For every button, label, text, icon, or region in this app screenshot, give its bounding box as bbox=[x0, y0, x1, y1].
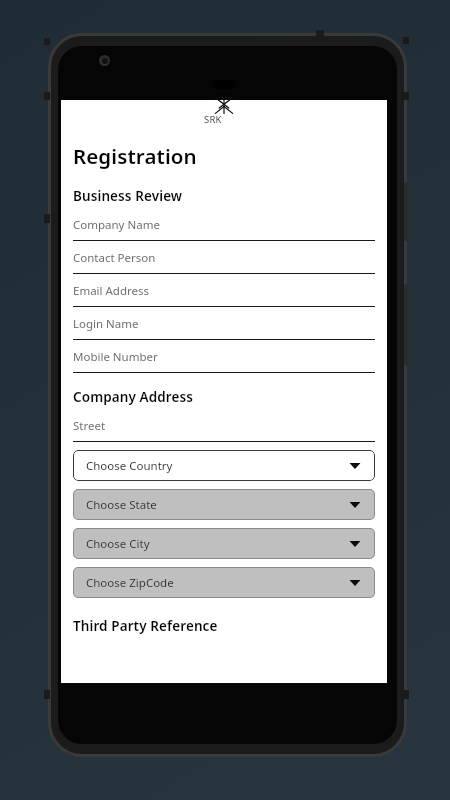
staticText: Email Address bbox=[73, 283, 150, 299]
staticText: Mobile Number bbox=[73, 349, 158, 365]
button[interactable]: Street bbox=[73, 409, 375, 442]
staticText: Login Name bbox=[73, 316, 139, 332]
button[interactable]: Contact Person bbox=[73, 241, 375, 274]
staticText: Choose Country bbox=[86, 458, 173, 474]
staticText: Street bbox=[73, 418, 106, 434]
button[interactable]: Choose Country bbox=[73, 450, 375, 481]
other: Open Choose ZipCode dropdown bbox=[348, 576, 362, 590]
staticText: Company Address bbox=[73, 388, 194, 406]
staticText: Choose ZipCode bbox=[86, 575, 174, 591]
staticText: Business Review bbox=[73, 187, 183, 205]
other: Open Choose City dropdown bbox=[348, 537, 362, 551]
button[interactable]: Company Name bbox=[73, 208, 375, 241]
staticText: Choose State bbox=[86, 497, 157, 513]
staticText: Third Party Reference bbox=[73, 617, 218, 635]
staticText: Contact Person bbox=[73, 250, 156, 266]
staticText: Choose City bbox=[86, 536, 150, 552]
button[interactable]: Choose State bbox=[73, 489, 375, 520]
button[interactable]: Choose City bbox=[73, 528, 375, 559]
other: Open Choose Country dropdown bbox=[348, 459, 362, 473]
button[interactable]: Login Name bbox=[73, 307, 375, 340]
button[interactable]: Mobile Number bbox=[73, 340, 375, 373]
staticText: Company Name bbox=[73, 217, 160, 233]
button[interactable]: Choose ZipCode bbox=[73, 567, 375, 598]
staticText: Registration bbox=[73, 142, 197, 170]
button[interactable]: Email Address bbox=[73, 274, 375, 307]
staticText: SRK bbox=[204, 113, 244, 126]
other: Open Choose State dropdown bbox=[348, 498, 362, 512]
